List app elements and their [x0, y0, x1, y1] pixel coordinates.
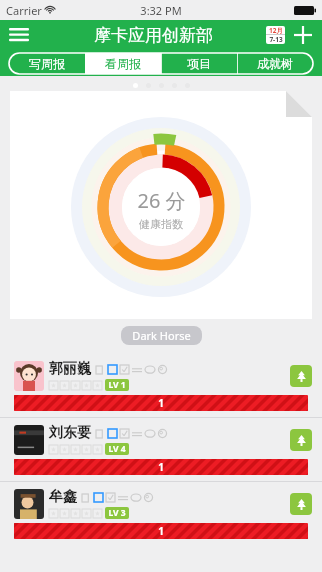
button[interactable]: Calendar — [262, 22, 288, 48]
staticText: 牟鑫 — [49, 488, 77, 506]
button[interactable]: 项目 — [161, 53, 237, 74]
button[interactable]: 写周报 — [9, 53, 85, 74]
button[interactable]: 牟鑫 — [0, 482, 322, 545]
staticText: 12月 — [269, 26, 283, 34]
staticText: 26 分 — [137, 187, 186, 214]
staticText: 摩卡应用创新部 — [94, 25, 213, 46]
button[interactable]: 刘东要 — [0, 418, 322, 481]
button[interactable]: Add — [290, 22, 316, 48]
button[interactable]: 1 — [14, 395, 308, 411]
button[interactable]: 1 — [14, 523, 308, 539]
button[interactable]: 1 — [14, 459, 308, 475]
button[interactable]: Tree — [290, 429, 312, 451]
staticText: 项目 — [187, 56, 211, 71]
staticText: 刘东要 — [49, 424, 91, 442]
staticText: Dark Horse — [132, 328, 191, 343]
staticText: 成就树 — [257, 56, 293, 71]
button[interactable]: 郭丽巍 — [0, 354, 322, 417]
staticText: 看周报 — [105, 56, 141, 71]
staticText: LV 1 — [108, 379, 126, 391]
button[interactable]: Tree — [290, 365, 312, 387]
button[interactable]: Tree — [290, 493, 312, 515]
staticText: 郭丽巍 — [49, 360, 91, 378]
staticText: 健康指数 — [139, 217, 183, 231]
staticText: 7-13 — [269, 35, 283, 44]
staticText: 3:32 PM — [140, 3, 182, 18]
button[interactable]: Menu — [6, 22, 32, 48]
staticText: 1 — [158, 524, 164, 538]
staticText: 1 — [158, 396, 164, 410]
staticText: LV 4 — [108, 443, 126, 455]
button[interactable]: Dark Horse — [121, 326, 202, 345]
button[interactable]: 成就树 — [237, 53, 313, 74]
staticText: LV 3 — [108, 507, 126, 519]
button[interactable]: 看周报 — [85, 53, 161, 74]
staticText: 写周报 — [29, 56, 65, 71]
staticText: Carrier — [6, 3, 42, 18]
staticText: 1 — [158, 460, 164, 474]
